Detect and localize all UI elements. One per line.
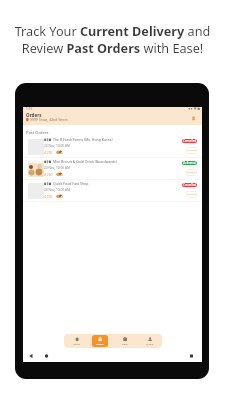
button[interactable]: Re-Order: [186, 147, 197, 154]
staticText: 24 Nov, 10:00 AM: [44, 188, 70, 192]
staticText: Delivered: [183, 161, 196, 165]
staticText: Cancelled: [183, 139, 197, 143]
staticText: 1:15: [26, 107, 33, 111]
staticText: Past Orders: [26, 130, 49, 135]
staticText: Quick Food Fast Shop: [53, 181, 89, 186]
button[interactable]: Profile: [141, 335, 158, 347]
staticText: Profile: [146, 342, 154, 345]
button[interactable]: Profile: [190, 114, 197, 121]
button[interactable]: Quick Food Fast Shop: [23, 180, 202, 202]
staticText: 4,250: [44, 172, 53, 176]
staticText: 4,250: [44, 194, 53, 198]
button[interactable]: Delivered: [182, 161, 197, 165]
staticText: Home: [73, 342, 80, 345]
staticText: The R Fresh Farms (Ms. Hong Kurea): [53, 137, 113, 142]
staticText: Re-Order: [187, 193, 197, 196]
button[interactable]: Home: [68, 335, 84, 347]
staticText: Orders: [96, 342, 104, 345]
staticText: Re-Order: [187, 149, 197, 152]
button[interactable]: Re-Order: [186, 191, 197, 198]
staticText: Orders: [26, 112, 42, 118]
button[interactable]: Orders: [92, 335, 108, 347]
staticText: 9999 Texas, 42nd Street: [30, 117, 68, 122]
button[interactable]: Offer: [116, 335, 133, 347]
staticText: 4,250: [44, 150, 53, 154]
staticText: Re-Order: [187, 171, 197, 174]
button[interactable]: Mini Biscuit & Gold Drink (Boardwards): [23, 158, 202, 180]
button[interactable]: Cancelled: [182, 139, 197, 143]
staticText: Track Your Current Delivery and Review P…: [0, 22, 225, 57]
staticText: Mini Biscuit & Gold Drink (Boardwards): [53, 159, 117, 164]
staticText: Offer: [122, 342, 128, 345]
button[interactable]: The R Fresh Farms (Ms. Hong Kurea): [23, 136, 202, 158]
button[interactable]: Re-Order: [186, 169, 197, 176]
staticText: 24 Nov, 10:00 AM: [44, 144, 70, 148]
button[interactable]: Cancelled: [182, 183, 197, 187]
staticText: Cancelled: [183, 183, 197, 187]
staticText: 24 Nov, 10:00 AM: [44, 166, 70, 170]
